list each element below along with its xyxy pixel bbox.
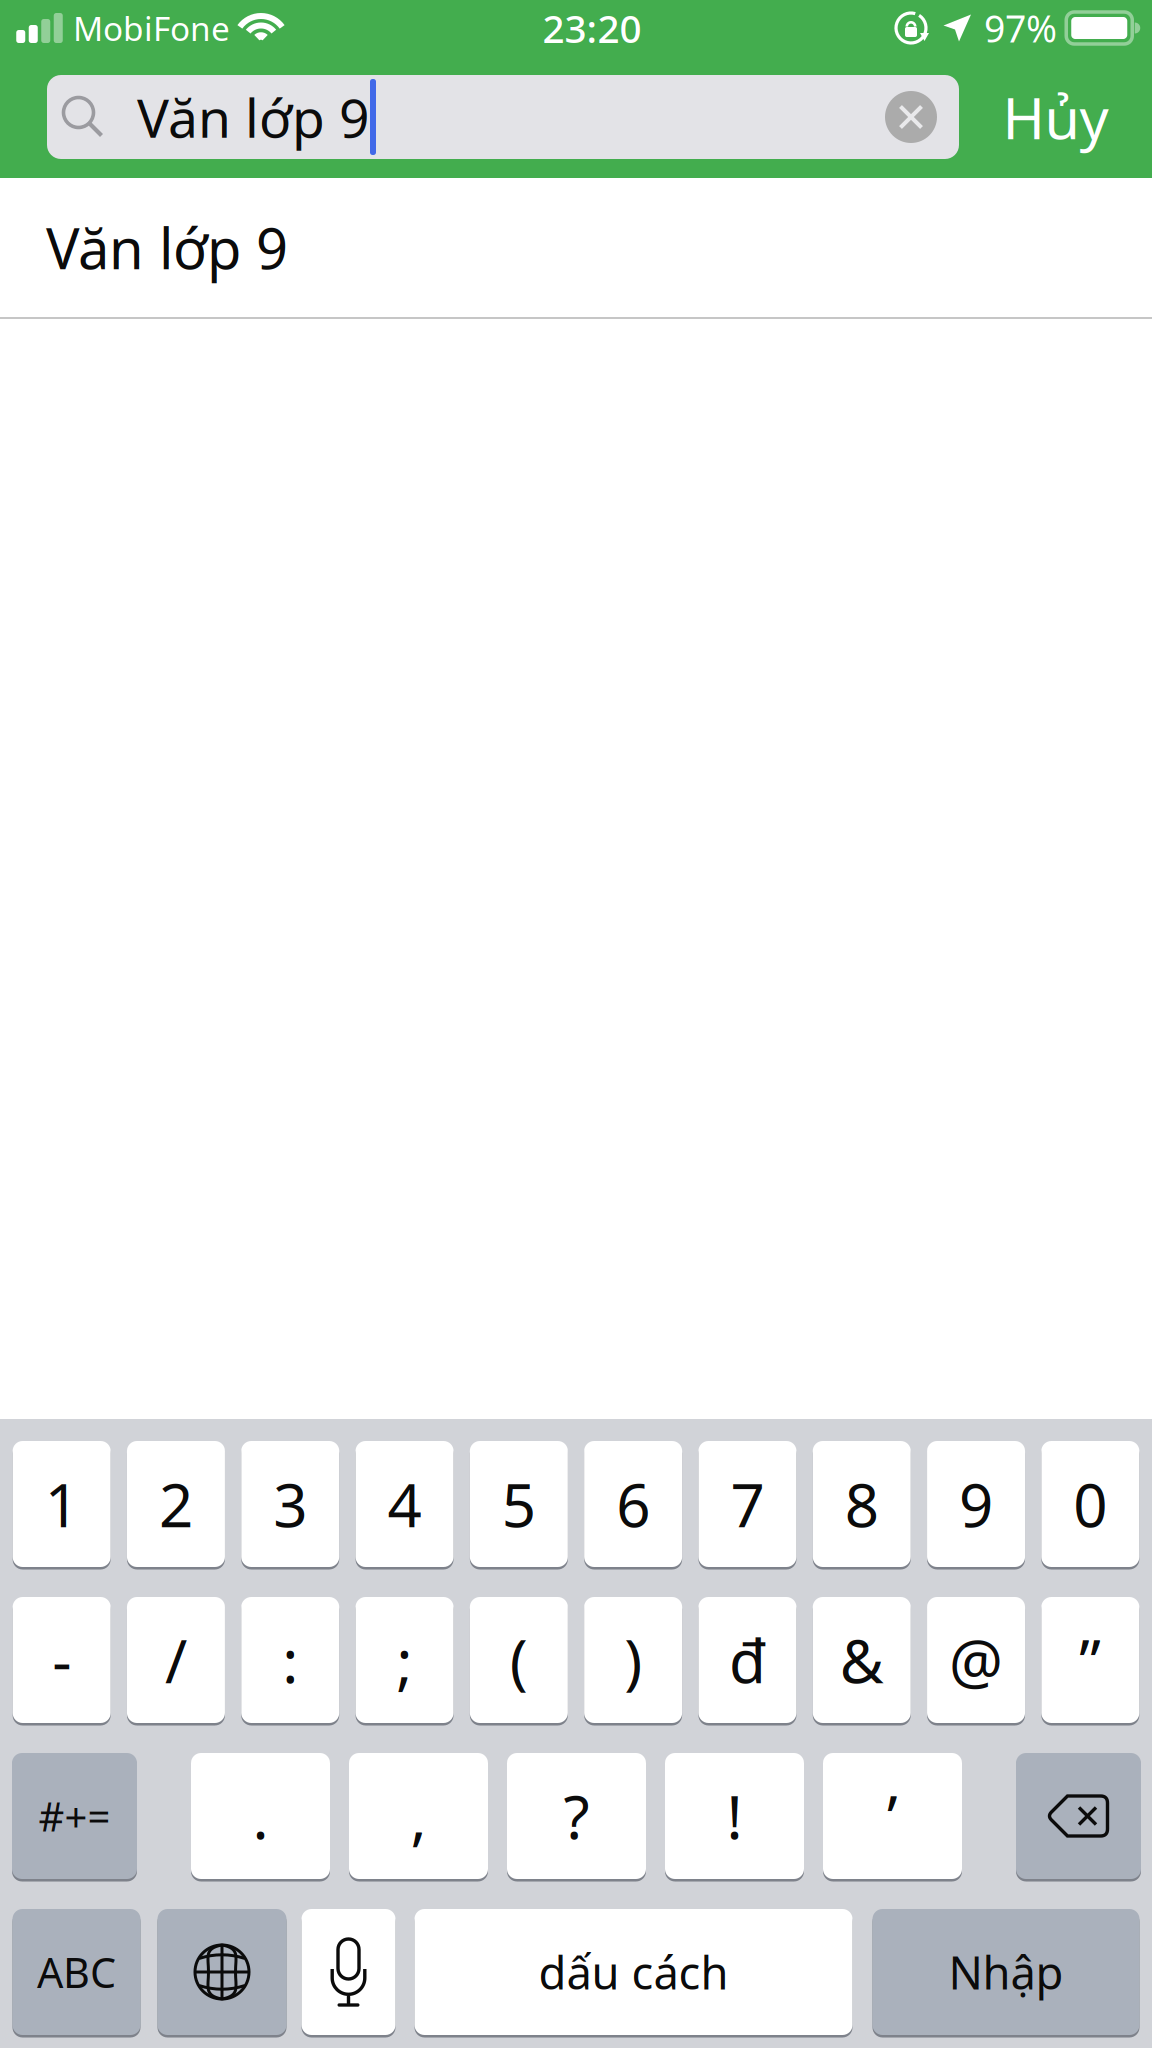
button[interactable]: #+= bbox=[12, 1753, 137, 1879]
staticText: & bbox=[840, 1620, 884, 1700]
staticText: ” bbox=[1079, 1620, 1101, 1700]
button[interactable]: ; bbox=[355, 1597, 453, 1723]
button[interactable]: Next keyboard bbox=[157, 1909, 286, 2035]
staticText: 8 bbox=[845, 1464, 879, 1544]
staticText: 2 bbox=[159, 1464, 193, 1544]
button[interactable]: . bbox=[191, 1753, 330, 1879]
button[interactable]: 2 bbox=[127, 1441, 225, 1567]
button[interactable]: ” bbox=[1041, 1597, 1139, 1723]
button[interactable]: Clear text bbox=[884, 90, 938, 144]
button[interactable]: Dictation bbox=[301, 1909, 395, 2035]
button[interactable]: ) bbox=[584, 1597, 682, 1723]
staticText: Nhập bbox=[948, 1942, 1063, 2002]
staticText: 5 bbox=[502, 1464, 536, 1544]
staticText: dấu cách bbox=[538, 1942, 728, 2002]
staticText: 97% bbox=[984, 3, 1057, 53]
button[interactable]: 9 bbox=[927, 1441, 1025, 1567]
button[interactable]: ( bbox=[470, 1597, 568, 1723]
staticText: 6 bbox=[616, 1464, 650, 1544]
button[interactable]: ? bbox=[507, 1753, 646, 1879]
staticText: 23:20 bbox=[542, 2, 641, 54]
staticText: Hủy bbox=[1002, 79, 1108, 155]
staticText: / bbox=[165, 1620, 187, 1700]
button[interactable]: / bbox=[127, 1597, 225, 1723]
button[interactable]: ! bbox=[665, 1753, 804, 1879]
staticText: 1 bbox=[45, 1464, 79, 1544]
button[interactable]: 7 bbox=[698, 1441, 796, 1567]
staticText: 0 bbox=[1073, 1464, 1107, 1544]
button[interactable]: Delete bbox=[1016, 1753, 1141, 1879]
button[interactable]: 8 bbox=[813, 1441, 911, 1567]
staticText: đ bbox=[729, 1620, 766, 1700]
button[interactable]: 5 bbox=[470, 1441, 568, 1567]
staticText: - bbox=[52, 1620, 71, 1700]
button[interactable]: 1 bbox=[13, 1441, 111, 1567]
button[interactable]: & bbox=[813, 1597, 911, 1723]
button[interactable]: , bbox=[349, 1753, 488, 1879]
staticText: MobiFone bbox=[73, 6, 230, 50]
button[interactable]: ’ bbox=[823, 1753, 962, 1879]
button[interactable]: 6 bbox=[584, 1441, 682, 1567]
button[interactable]: dấu cách bbox=[414, 1909, 852, 2035]
button[interactable]: 0 bbox=[1041, 1441, 1139, 1567]
staticText: ? bbox=[563, 1776, 589, 1856]
button[interactable]: 4 bbox=[355, 1441, 453, 1567]
staticText: 9 bbox=[959, 1464, 993, 1544]
button[interactable]: @ bbox=[927, 1597, 1025, 1723]
staticText: . bbox=[252, 1776, 268, 1856]
staticText: ( bbox=[510, 1620, 528, 1700]
button[interactable]: Hủy bbox=[959, 72, 1152, 162]
staticText: ’ bbox=[887, 1776, 898, 1856]
staticText: @ bbox=[949, 1620, 1003, 1700]
staticText: ABC bbox=[37, 1945, 116, 1999]
button[interactable]: - bbox=[13, 1597, 111, 1723]
button[interactable]: Văn lớp 9 bbox=[0, 178, 1152, 317]
button[interactable]: ABC bbox=[12, 1909, 140, 2035]
staticText: Văn lớp 9 bbox=[137, 82, 370, 152]
staticText: 3 bbox=[273, 1464, 307, 1544]
button[interactable]: Nhập bbox=[872, 1909, 1139, 2035]
button[interactable]: đ bbox=[698, 1597, 796, 1723]
staticText: ) bbox=[624, 1620, 642, 1700]
staticText: #+= bbox=[38, 1789, 110, 1842]
staticText: Văn lớp 9 bbox=[46, 210, 288, 285]
staticText: ; bbox=[396, 1620, 412, 1700]
staticText: 4 bbox=[387, 1464, 421, 1544]
staticText: : bbox=[282, 1620, 298, 1700]
staticText: , bbox=[410, 1776, 426, 1856]
button[interactable]: : bbox=[241, 1597, 339, 1723]
staticText: ! bbox=[726, 1776, 742, 1856]
button[interactable]: 3 bbox=[241, 1441, 339, 1567]
staticText: 7 bbox=[730, 1464, 764, 1544]
